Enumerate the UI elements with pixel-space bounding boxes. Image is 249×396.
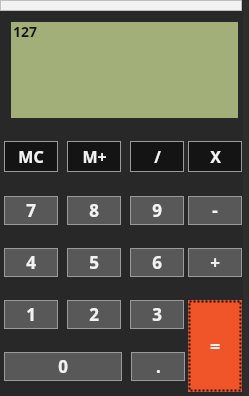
button[interactable]: 7 [4,196,58,225]
staticText: 2 [89,303,99,326]
staticText: 5 [89,251,99,274]
button[interactable]: 5 [67,248,121,277]
staticText: 1 [26,303,36,326]
staticText: . [156,355,161,378]
staticText: 0 [58,355,68,378]
staticText: - [212,199,218,222]
button[interactable]: / [130,141,184,172]
button[interactable]: 4 [4,248,58,277]
staticText: 127 [13,22,38,41]
button[interactable]: 6 [130,248,184,277]
button[interactable]: + [188,248,242,277]
button[interactable]: 2 [67,300,121,329]
staticText: 9 [152,199,162,222]
button[interactable]: Equals [188,300,242,392]
staticText: 3 [152,303,162,326]
staticText: M+ [82,146,107,168]
staticText: 6 [152,251,162,274]
button[interactable]: 3 [130,300,184,329]
button[interactable]: 0 [4,352,122,381]
staticText: X [210,146,221,168]
button[interactable]: . [131,352,185,381]
staticText: + [210,251,220,274]
button[interactable]: X [188,141,242,172]
staticText: 8 [89,199,99,222]
staticText: 7 [26,199,36,222]
button[interactable]: 9 [130,196,184,225]
button[interactable]: M+ [67,141,121,172]
staticText: = [210,334,221,359]
staticText: / [154,146,161,168]
button[interactable]: MC [4,141,58,172]
button[interactable]: - [188,196,242,225]
button[interactable]: 1 [4,300,58,329]
staticText: MC [18,146,44,168]
button[interactable]: 8 [67,196,121,225]
staticText: 4 [26,251,36,274]
